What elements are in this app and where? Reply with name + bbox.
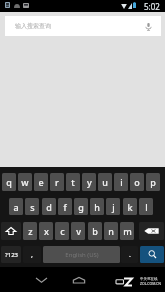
button[interactable]: s [25,198,39,215]
button[interactable]: l [139,198,153,215]
staticText: t [71,176,75,188]
staticText: o [134,176,140,188]
button[interactable]: . [121,246,138,263]
button[interactable]: i [114,173,128,191]
staticText: m [123,225,132,237]
staticText: a [13,201,19,213]
staticText: i [120,176,123,188]
button[interactable]: j [106,198,120,215]
button[interactable]: g [74,198,88,215]
staticText: y [87,176,92,188]
staticText: z [28,225,33,237]
button[interactable]: r [50,173,64,191]
staticText: x [44,225,49,237]
staticText: v [76,225,81,237]
button[interactable]: o [130,173,144,191]
button[interactable]: z [23,222,37,240]
button[interactable]: f [58,198,72,215]
staticText: s [30,201,35,213]
button[interactable]: Home [70,272,88,288]
staticText: l [145,201,148,213]
button[interactable]: Backspace [139,222,164,240]
staticText: English (US) [65,251,99,259]
button[interactable]: b [88,222,102,240]
staticText: c [60,225,65,237]
button[interactable]: n [104,222,118,240]
staticText: b [92,225,98,237]
button[interactable]: q [2,173,16,191]
button[interactable]: a [9,198,23,215]
button[interactable]: Search [140,246,164,263]
staticText: . [129,250,131,260]
button[interactable]: ?123 [1,246,21,263]
button[interactable]: 输入搜索查询 [5,16,161,36]
button[interactable]: w [18,173,32,191]
button[interactable]: m [120,222,134,240]
staticText: 输入搜索查询 [15,22,51,30]
staticText: r [55,176,59,188]
staticText: 5:02 [144,1,160,12]
button[interactable]: English (US) [43,246,120,263]
button[interactable]: Recent apps [108,272,126,288]
button[interactable]: y [82,173,96,191]
staticText: d [46,201,52,213]
button[interactable]: u [98,173,112,191]
staticText: f [63,201,67,213]
button[interactable]: Voice search [141,19,155,33]
staticText: p [150,176,156,188]
button[interactable]: e [34,173,48,191]
button[interactable]: p [146,173,160,191]
staticText: 中关村在线 [140,277,158,281]
staticText: j [112,201,115,213]
staticText: u [102,176,108,188]
button[interactable]: d [42,198,56,215]
button[interactable]: Back [33,273,49,287]
button[interactable]: v [71,222,85,240]
button[interactable]: Shift [1,222,21,240]
button[interactable]: h [90,198,104,215]
button[interactable]: , [23,246,41,263]
staticText: n [108,225,114,237]
staticText: q [6,176,12,188]
staticText: h [94,201,100,213]
button[interactable]: t [66,173,80,191]
button[interactable]: x [39,222,53,240]
staticText: ?123 [5,251,18,259]
staticText: , [31,250,33,260]
button[interactable]: k [123,198,137,215]
staticText: e [38,176,44,188]
staticText: k [127,201,133,213]
staticText: g [78,201,84,213]
staticText: w [21,176,29,188]
button[interactable]: c [55,222,69,240]
staticText: ZOL.COM.CN [140,281,161,286]
